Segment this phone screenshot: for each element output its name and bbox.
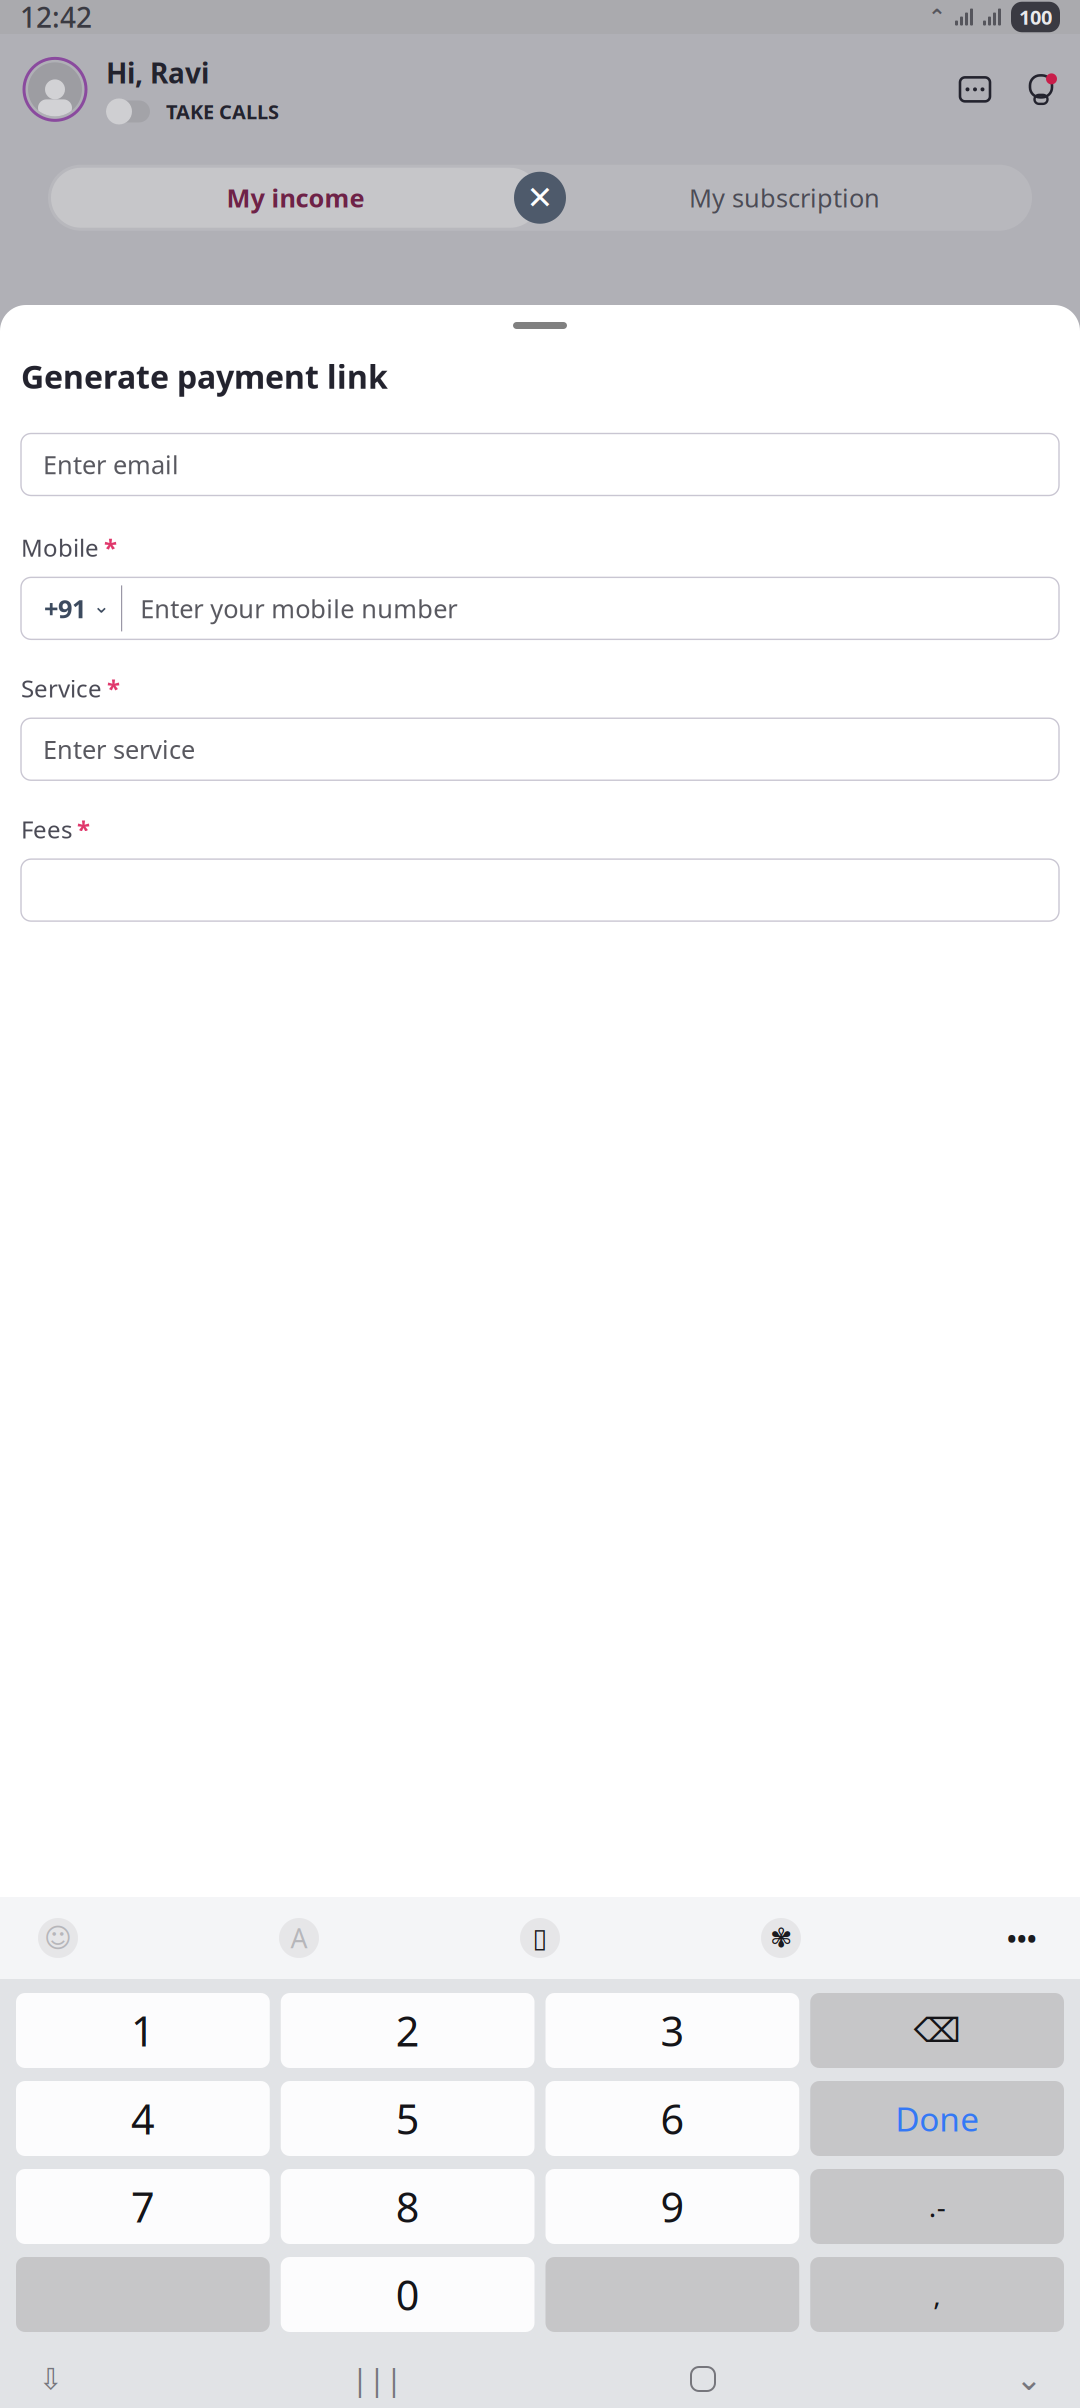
- staticText: My income: [226, 181, 364, 214]
- button[interactable]: Translate: [277, 1916, 321, 1960]
- staticText: Enter your mobile number: [140, 591, 457, 625]
- button[interactable]: 2: [281, 1993, 535, 2068]
- staticText: 12:42: [20, 0, 92, 36]
- staticText: Mobile: [21, 531, 99, 563]
- button[interactable]: 0: [281, 2257, 535, 2332]
- staticText: ▯: [532, 1923, 547, 1953]
- staticText: Done: [895, 2096, 979, 2141]
- staticText: A: [290, 1920, 307, 1956]
- staticText: ✕: [526, 180, 553, 216]
- staticText: ⇩: [38, 2362, 63, 2396]
- staticText: ☺: [44, 1923, 72, 1953]
- button[interactable]: Recent apps: [348, 2354, 406, 2404]
- staticText: +91: [44, 591, 86, 625]
- staticText: 7: [131, 2179, 155, 2234]
- button[interactable]: 7: [16, 2169, 270, 2244]
- button[interactable]: My subscription: [540, 168, 1029, 228]
- button[interactable]: 9: [545, 2169, 799, 2244]
- button[interactable]: Notifications: [1024, 72, 1058, 106]
- button[interactable]: Keyboard settings: [759, 1916, 803, 1960]
- staticText: Service: [21, 672, 102, 704]
- staticText: TAKE CALLS: [166, 98, 279, 125]
- button[interactable]: Close: [514, 172, 566, 224]
- button[interactable]: ,: [810, 2257, 1064, 2332]
- button[interactable]: Done: [810, 2081, 1064, 2156]
- button[interactable]: .-: [810, 2169, 1064, 2244]
- staticText: Hi, Ravi: [106, 54, 209, 91]
- staticText: Fees: [21, 813, 72, 845]
- staticText: *: [77, 813, 90, 845]
- staticText: .-: [929, 2188, 946, 2225]
- button[interactable]: Messages: [958, 72, 992, 106]
- staticText: 9: [660, 2179, 684, 2234]
- button[interactable]: Hide keyboard: [1000, 2354, 1058, 2404]
- staticText: Enter service: [43, 732, 195, 766]
- button[interactable]: 3: [545, 1993, 799, 2068]
- button[interactable]: More: [1000, 1916, 1044, 1960]
- staticText: 3: [660, 2003, 684, 2058]
- staticText: ⌫: [914, 2012, 961, 2049]
- button[interactable]: 6: [545, 2081, 799, 2156]
- staticText: |||: [351, 2359, 402, 2399]
- staticText: Generate payment link: [21, 355, 388, 397]
- button[interactable]: My income: [51, 168, 540, 228]
- button[interactable]: Emoji: [36, 1916, 80, 1960]
- button[interactable]: Clipboard: [518, 1916, 562, 1960]
- staticText: 0: [396, 2267, 420, 2322]
- button[interactable]: 5: [281, 2081, 535, 2156]
- staticText: Enter email: [43, 448, 179, 481]
- staticText: 4: [131, 2091, 155, 2146]
- staticText: 1: [131, 2003, 155, 2058]
- staticText: My subscription: [689, 181, 880, 214]
- staticText: ⌄: [1015, 2361, 1042, 2397]
- staticText: 2: [396, 2003, 420, 2058]
- staticText: ⌃: [928, 5, 946, 29]
- staticText: *: [107, 672, 120, 704]
- staticText: ⌄: [93, 594, 110, 617]
- button[interactable]: 1: [16, 1993, 270, 2068]
- button[interactable]: [21, 859, 1059, 921]
- button[interactable]: Voice input: [22, 2354, 80, 2404]
- button[interactable]: TAKE CALLS: [106, 98, 279, 125]
- staticText: ,: [933, 2276, 941, 2313]
- button[interactable]: Enter service: [21, 718, 1059, 780]
- staticText: ✾: [770, 1923, 792, 1953]
- staticText: 6: [660, 2091, 684, 2146]
- button[interactable]: Enter email: [21, 433, 1059, 495]
- staticText: *: [104, 531, 117, 563]
- button[interactable]: Country code +91: [33, 578, 121, 638]
- staticText: 8: [396, 2179, 420, 2234]
- button[interactable]: 4: [16, 2081, 270, 2156]
- button[interactable]: ⌫: [810, 1993, 1064, 2068]
- staticText: •••: [1007, 1921, 1037, 1955]
- staticText: 100: [1019, 4, 1052, 30]
- button[interactable]: Home: [674, 2354, 732, 2404]
- button[interactable]: 8: [281, 2169, 535, 2244]
- staticText: 5: [396, 2091, 420, 2146]
- button[interactable]: Enter your mobile number: [122, 578, 1059, 638]
